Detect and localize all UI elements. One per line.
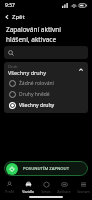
staticText: Druh [8, 64, 18, 69]
staticText: Zapalování aktivní [6, 25, 61, 34]
staticText: Žádné rolování [19, 80, 54, 87]
button[interactable]: Search [4, 46, 88, 59]
staticText: Seznam [77, 189, 90, 193]
staticText: Servis [41, 189, 51, 193]
other: Search [8, 50, 14, 56]
button[interactable]: Všechny druhy [4, 100, 88, 111]
other: Vozidlo [25, 181, 32, 188]
staticText: hlášení, aktivace [6, 35, 57, 44]
other: Servis [43, 181, 50, 188]
button[interactable]: POSUNUTÍM ZAPNOUT [4, 161, 88, 176]
button[interactable]: Druhy hnědé [4, 89, 88, 100]
staticText: Aplikace [57, 189, 71, 193]
button[interactable]: Seznam [74, 180, 92, 194]
staticText: Profil [5, 189, 14, 193]
button[interactable]: Servis [37, 180, 55, 194]
staticText: 9:57 [5, 2, 15, 9]
staticText: Zpět [12, 13, 25, 21]
button[interactable]: Zpět [0, 11, 92, 23]
staticText: Všechny druhy [8, 69, 46, 76]
button[interactable]: Žádné rolování [4, 78, 88, 89]
staticText: Všechny druhy [19, 102, 55, 109]
button[interactable]: Druh [4, 62, 88, 78]
button[interactable]: Vozidlo [19, 180, 37, 194]
other: Seznam [80, 181, 87, 188]
button[interactable]: Aplikace [55, 180, 73, 194]
other: Aplikace [61, 181, 68, 188]
button[interactable]: Profil [0, 180, 18, 194]
other: Profil [6, 181, 13, 188]
staticText: Druhy hnědé [19, 91, 50, 98]
other: Collapse [78, 67, 84, 73]
staticText: POSUNUTÍM ZAPNOUT [23, 166, 70, 172]
staticText: Vozidlo [22, 189, 34, 193]
